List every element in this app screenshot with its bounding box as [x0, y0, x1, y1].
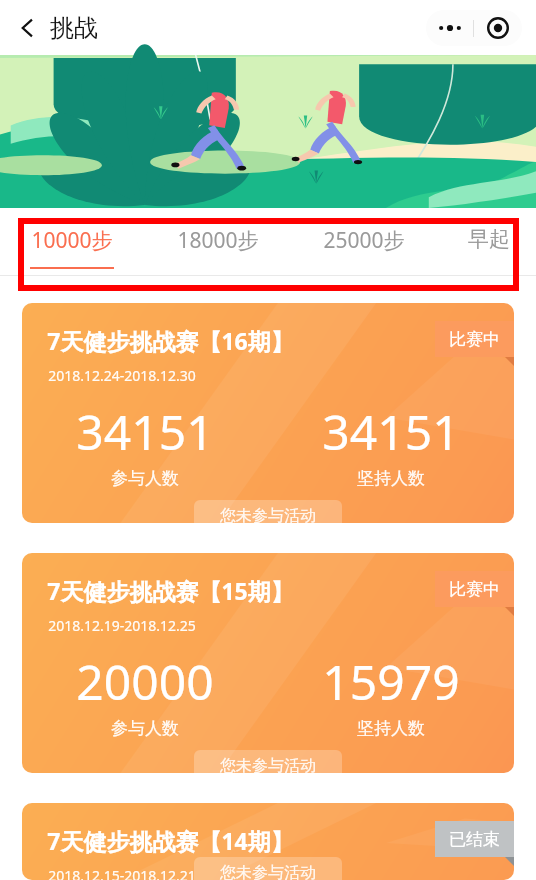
button[interactable]: 18000步 — [177, 226, 259, 269]
staticText: 34151 — [322, 399, 460, 464]
staticText: 2018.12.19-2018.12.25 — [48, 616, 196, 635]
button[interactable]: 比赛中 — [449, 571, 500, 607]
button[interactable]: 早起 — [468, 226, 510, 266]
staticText: 10000步 — [31, 226, 113, 255]
staticText: 您未参与活动 — [220, 863, 316, 880]
button[interactable]: 7天健步挑战赛【14期】 — [22, 803, 514, 880]
button[interactable]: 您未参与活动 — [194, 500, 342, 523]
staticText: 早起 — [468, 226, 510, 252]
button[interactable]: 已结束 — [449, 821, 500, 857]
staticText: 比赛中 — [449, 329, 500, 350]
staticText: 2018.12.24-2018.12.30 — [48, 366, 196, 385]
staticText: 坚持人数 — [357, 468, 425, 489]
staticText: 已结束 — [449, 829, 500, 850]
staticText: 7天健步挑战赛【14期】 — [47, 825, 294, 856]
staticText: 34151 — [76, 399, 214, 464]
staticText: 18000步 — [177, 226, 259, 255]
button[interactable]: Back — [6, 6, 50, 50]
staticText: 15979 — [322, 649, 460, 714]
staticText: 7天健步挑战赛【15期】 — [47, 575, 294, 606]
button[interactable]: Menu and close — [426, 10, 522, 46]
staticText: 参与人数 — [111, 468, 179, 489]
staticText: 7天健步挑战赛【16期】 — [47, 325, 294, 356]
staticText: 您未参与活动 — [220, 506, 316, 523]
button[interactable]: 25000步 — [323, 226, 405, 269]
staticText: 挑战 — [50, 13, 98, 43]
staticText: 您未参与活动 — [220, 756, 316, 773]
staticText: 坚持人数 — [357, 718, 425, 739]
button[interactable]: 您未参与活动 — [194, 857, 342, 880]
button[interactable]: 比赛中 — [449, 321, 500, 357]
button[interactable]: 10000步 — [30, 226, 114, 269]
button[interactable]: 7天健步挑战赛【15期】 — [22, 553, 514, 773]
staticText: 2018.12.15-2018.12.21 — [48, 866, 196, 880]
staticText: 25000步 — [323, 226, 405, 255]
staticText: 20000 — [76, 649, 214, 714]
button[interactable]: 7天健步挑战赛【16期】 — [22, 303, 514, 523]
staticText: 比赛中 — [449, 579, 500, 600]
staticText: 参与人数 — [111, 718, 179, 739]
button[interactable]: 您未参与活动 — [194, 750, 342, 773]
